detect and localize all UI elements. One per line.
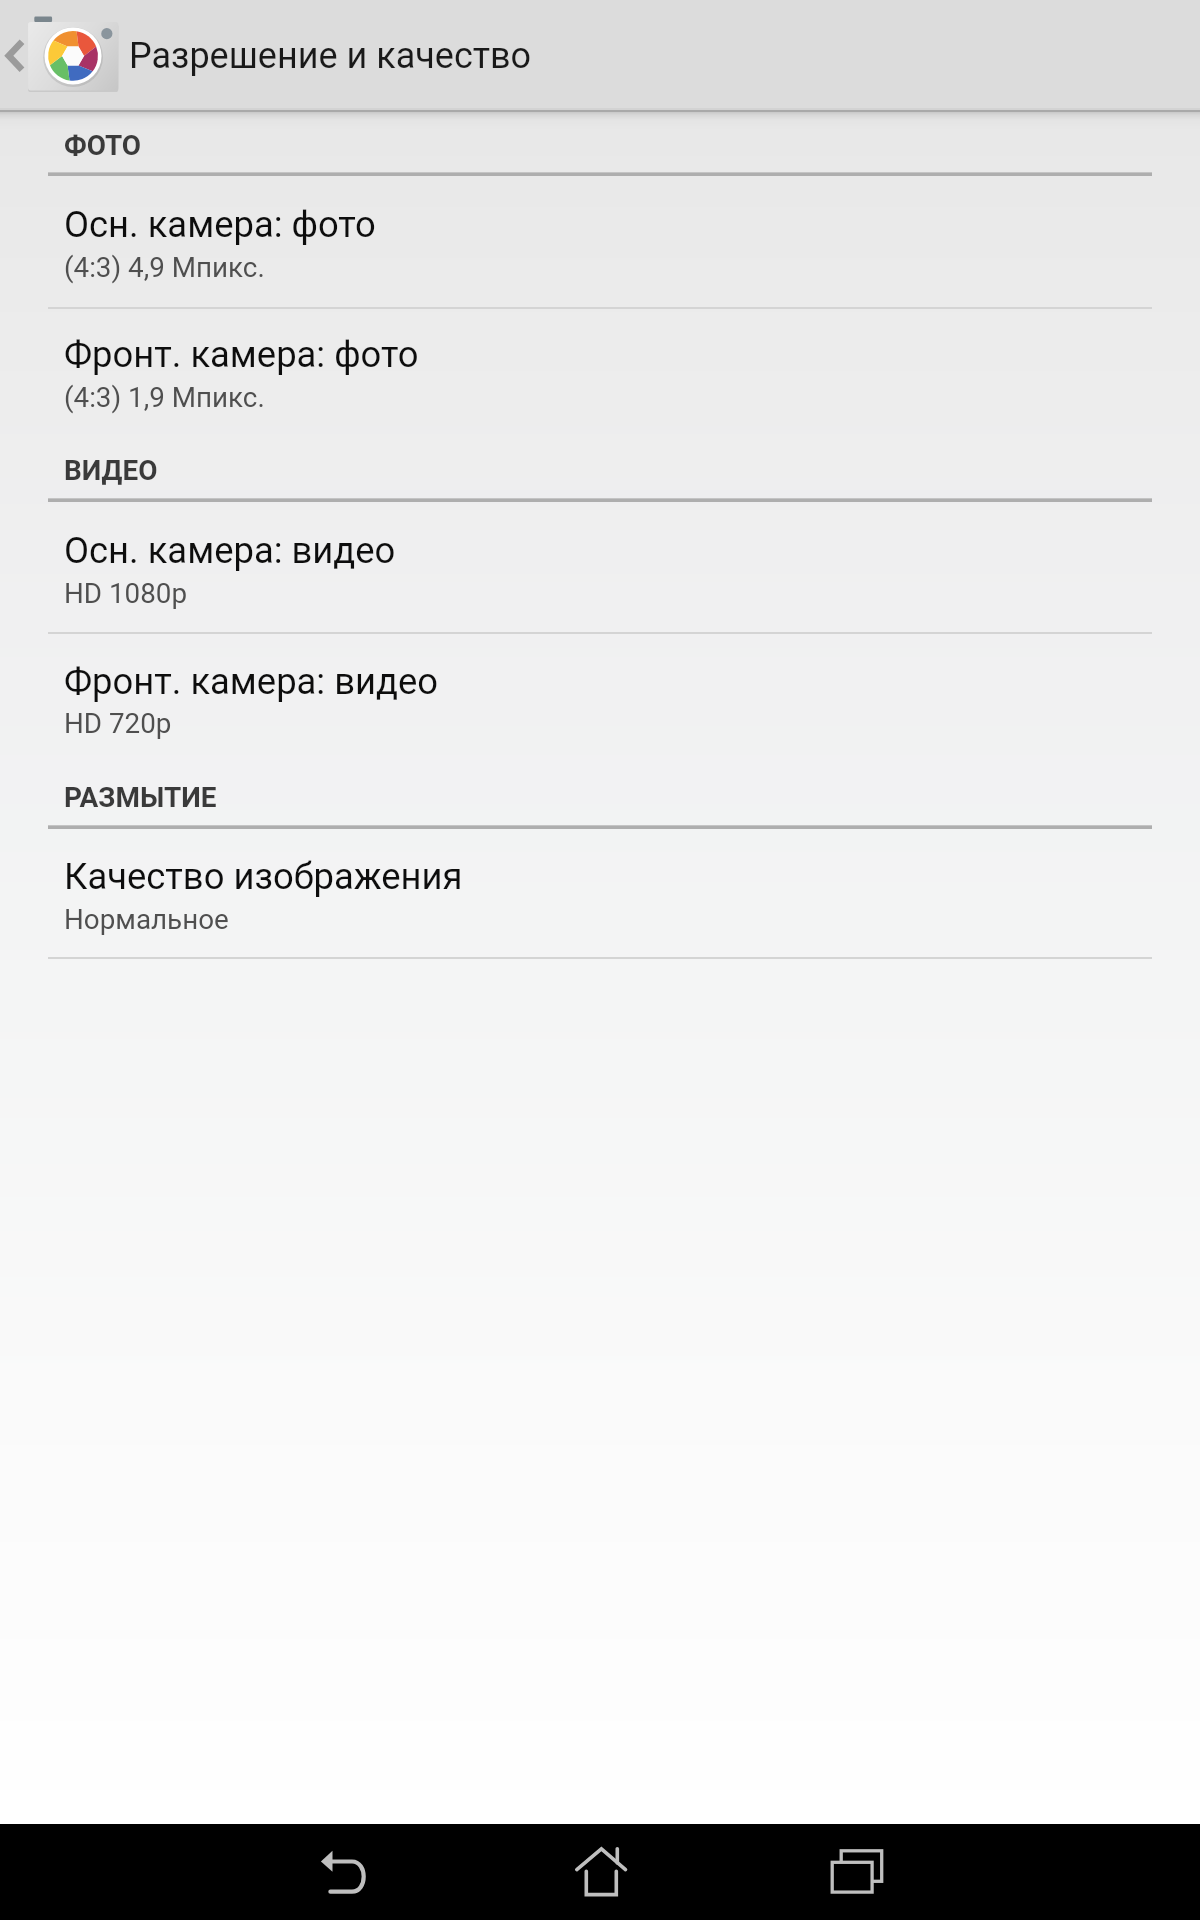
staticText: Нормальное	[64, 903, 229, 936]
staticText: Осн. камера: видео	[64, 529, 396, 572]
staticText: HD 1080p	[64, 577, 188, 610]
staticText: Фронт. камера: фото	[64, 333, 419, 376]
staticText: (4:3) 1,9 Мпикс.	[64, 381, 265, 414]
staticText: РАЗМЫТИЕ	[64, 781, 217, 814]
staticText: Разрешение и качество	[129, 35, 532, 77]
button[interactable]	[0, 315, 1200, 418]
staticText: HD 720p	[64, 707, 172, 740]
button[interactable]: Recents	[793, 1824, 921, 1920]
button[interactable]	[0, 837, 1200, 940]
staticText: Осн. камера: фото	[64, 203, 376, 246]
button[interactable]: Разрешение и качество	[0, 0, 1200, 112]
staticText: ВИДЕО	[64, 454, 158, 487]
staticText: ФОТО	[64, 129, 142, 162]
staticText: (4:3) 4,9 Мпикс.	[64, 251, 265, 284]
staticText: Качество изображения	[64, 855, 463, 898]
staticText: Фронт. камера: видео	[64, 660, 439, 703]
button[interactable]: Back	[280, 1824, 408, 1920]
button[interactable]: Home	[537, 1824, 665, 1920]
button[interactable]	[0, 511, 1200, 614]
button[interactable]	[0, 642, 1200, 745]
button[interactable]	[0, 185, 1200, 288]
